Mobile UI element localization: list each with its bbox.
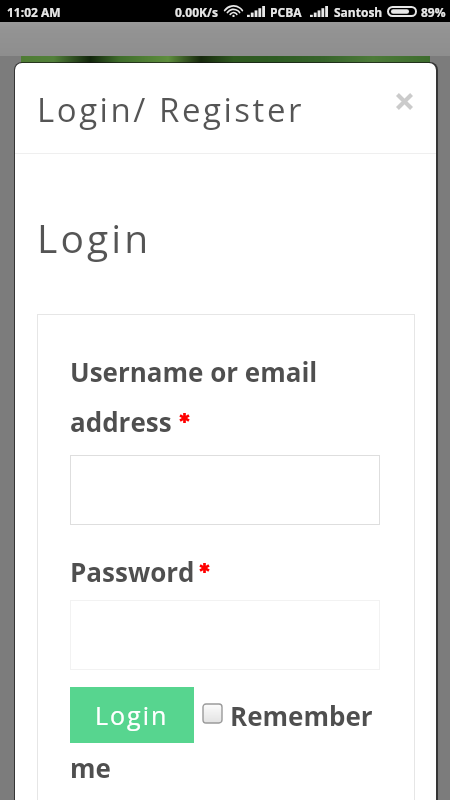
staticText: Login: [95, 698, 169, 732]
staticText: Santosh: [334, 4, 383, 20]
button[interactable]: Remember me checkbox: [203, 704, 222, 723]
staticText: PCBA: [270, 4, 302, 20]
staticText: 89%: [421, 4, 446, 20]
button[interactable]: Username or email address field: [70, 455, 380, 525]
staticText: 11:02 AM: [7, 4, 61, 20]
button[interactable]: Close: [383, 80, 425, 122]
staticText: 0.00K/s: [175, 4, 218, 20]
staticText: Login/ Register: [37, 87, 304, 132]
staticText: me: [70, 750, 111, 785]
staticText: Username or email: [70, 354, 318, 389]
staticText: Password: [70, 554, 195, 589]
staticText: address: [70, 404, 172, 439]
staticText: Login: [37, 211, 152, 264]
staticText: Remember: [230, 698, 373, 733]
button[interactable]: Login: [70, 687, 194, 743]
